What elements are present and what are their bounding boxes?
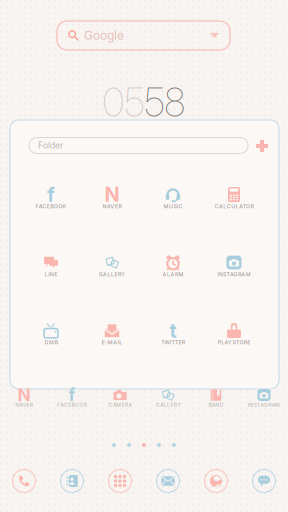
button[interactable]: BAND [192,387,240,411]
button[interactable]: Add app [253,137,271,155]
button[interactable]: Phone [9,466,39,496]
staticText: GALLERY [99,271,125,277]
staticText: t [169,318,176,343]
button[interactable]: f [21,184,81,216]
staticText: INSTAGRAM [217,271,251,277]
button[interactable]: Apps [105,466,135,496]
button[interactable]: CAMERA [96,387,144,411]
staticText: MUSIC [164,203,182,209]
staticText: NAVER [103,203,121,209]
staticText: DMB [44,339,57,345]
button[interactable]: GALLERY [144,387,192,411]
button[interactable]: Browser [201,466,231,496]
button[interactable]: f [48,387,96,411]
staticText: N [104,182,119,207]
staticText: f [68,384,75,405]
staticText: LINE [45,271,57,277]
button[interactable]: DMB [21,320,81,352]
button[interactable]: INSTAGRAM [240,387,288,411]
button[interactable]: Folder [29,137,248,153]
button[interactable]: CALCULATOR [204,184,264,216]
button[interactable]: t [143,320,203,352]
staticText: FACEBOOK [57,402,87,408]
staticText: NAVER [15,402,33,408]
staticText: FACEBOOK [35,203,67,209]
staticText: CALCULATOR [214,203,254,209]
staticText: PLAYSTORE [218,339,250,345]
staticText: E-MAIL [102,339,122,345]
button[interactable]: N [82,184,142,216]
staticText: TWITTER [161,339,185,345]
staticText: INSTAGRAM [248,402,280,408]
staticText: GALLERY [156,402,180,408]
button[interactable]: GALLERY [82,252,142,284]
staticText: f [47,182,55,207]
button[interactable]: Google [53,18,233,52]
button[interactable]: INSTAGRAM [204,252,264,284]
staticText: Folder [38,140,63,151]
button[interactable]: Contacts [57,466,87,496]
staticText: CAMERA [108,402,131,408]
staticText: N [17,384,30,405]
staticText: Google [84,28,124,43]
staticText: ALARM [163,271,183,277]
button[interactable]: ALARM [143,252,203,284]
staticText: 58 [144,79,185,126]
button[interactable]: N [0,387,48,411]
button[interactable]: LINE [21,252,81,284]
button[interactable]: MUSIC [143,184,203,216]
button[interactable]: PLAYSTORE [204,320,264,352]
button[interactable]: Messages [153,466,183,496]
staticText: 05 [102,79,144,126]
button[interactable]: E-MAIL [82,320,142,352]
staticText: BAND [208,402,224,408]
button[interactable]: Chat [249,466,279,496]
